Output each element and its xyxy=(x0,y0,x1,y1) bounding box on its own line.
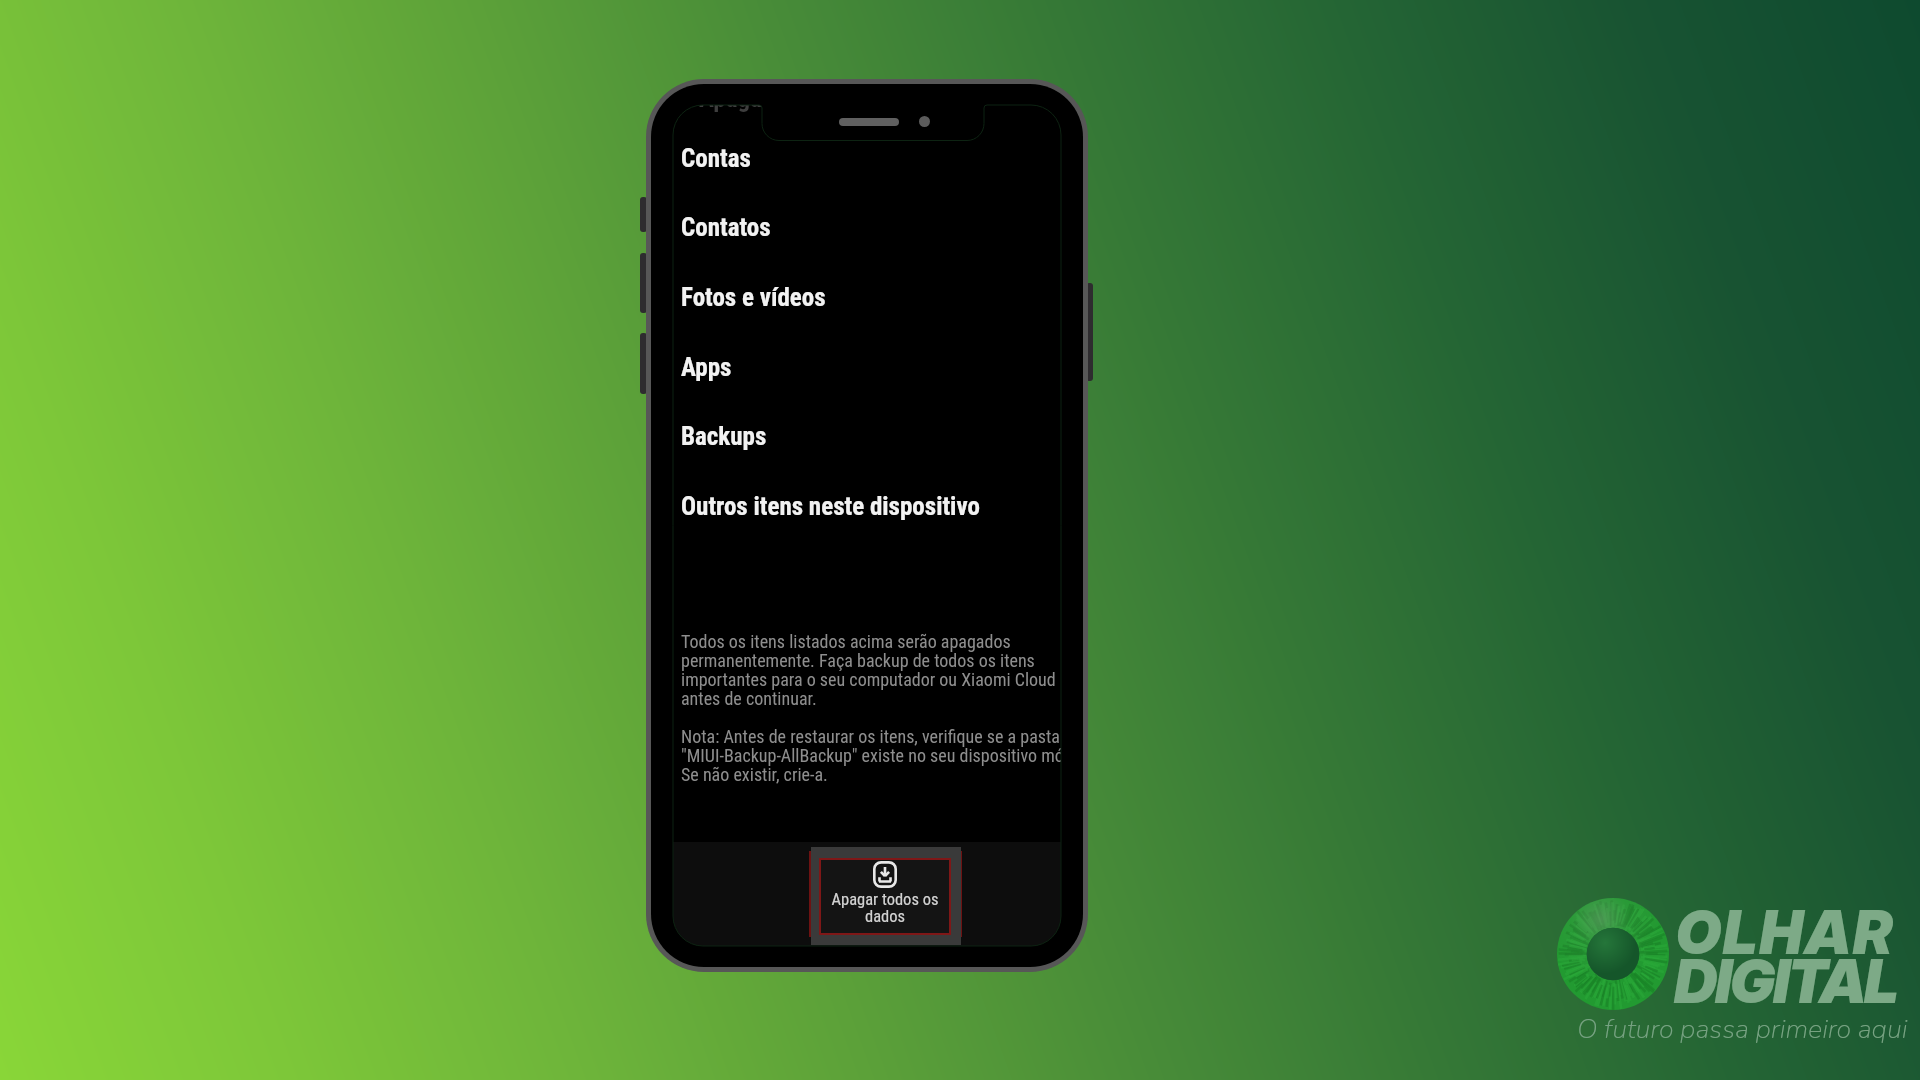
staticText: OLHAR xyxy=(1676,896,1895,969)
staticText: Contas xyxy=(681,144,751,173)
staticText: Nota: Antes de restaurar os itens, verif… xyxy=(681,726,1061,785)
button[interactable]: Apps xyxy=(673,333,1061,402)
staticText: DIGITAL xyxy=(1674,945,1897,1018)
button[interactable]: Outros itens neste dispositivo xyxy=(673,472,1061,541)
button[interactable]: Apagar todos os dados xyxy=(819,858,951,935)
staticText: Todos os itens listados acima serão apag… xyxy=(681,631,1056,709)
staticText: O futuro passa primeiro aqui xyxy=(1577,1011,1908,1048)
staticText: Fotos e vídeos xyxy=(681,283,826,312)
button[interactable]: Contatos xyxy=(673,193,1061,262)
staticText: Apagar todos os dados xyxy=(831,890,939,926)
button[interactable]: Contas xyxy=(673,124,1061,193)
button[interactable]: Backups xyxy=(673,402,1061,471)
staticText: Apps xyxy=(681,353,732,382)
staticText: Apagar dados xyxy=(699,105,837,113)
staticText: Backups xyxy=(681,422,767,451)
staticText: Outros itens neste dispositivo xyxy=(681,492,980,521)
other: Apagar todos os dados xyxy=(873,861,897,888)
staticText: Contatos xyxy=(681,213,771,242)
button[interactable]: Fotos e vídeos xyxy=(673,263,1061,332)
